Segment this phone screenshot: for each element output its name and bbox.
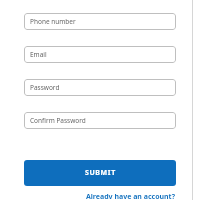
button[interactable]: Email [24, 46, 176, 63]
button[interactable]: Already have an account? Sign in [84, 191, 176, 200]
button[interactable]: Phone number [24, 13, 176, 30]
staticText: SUBMIT [85, 168, 116, 178]
staticText: Password [30, 83, 60, 92]
button[interactable]: SUBMIT [24, 160, 176, 186]
staticText: Confirm Password [30, 116, 86, 125]
staticText: Already have an account? [85, 192, 175, 199]
button[interactable]: Password [24, 79, 176, 96]
staticText: Phone number [30, 17, 76, 26]
button[interactable]: Confirm Password [24, 112, 176, 129]
staticText: Email [30, 50, 47, 59]
